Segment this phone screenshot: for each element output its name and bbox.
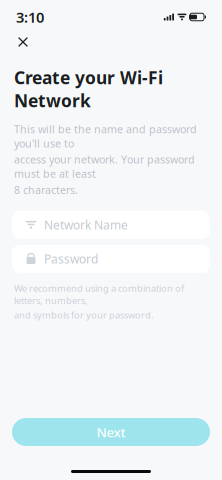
staticText: access your network. Your password must …: [14, 152, 195, 181]
button[interactable]: Next: [12, 418, 210, 446]
staticText: We recommend using a combination of lett…: [14, 282, 184, 307]
staticText: This will be the name and password you'l…: [14, 122, 197, 150]
button[interactable]: Close: [10, 30, 36, 54]
staticText: Password: [44, 251, 98, 267]
staticText: Network Name: [44, 217, 128, 233]
staticText: 3:10: [16, 7, 44, 27]
staticText: 8 characters.: [14, 183, 78, 197]
staticText: and symbols for your password.: [14, 309, 154, 321]
staticText: Next: [96, 423, 125, 441]
staticText: Create your Wi-Fi Network: [14, 66, 163, 112]
